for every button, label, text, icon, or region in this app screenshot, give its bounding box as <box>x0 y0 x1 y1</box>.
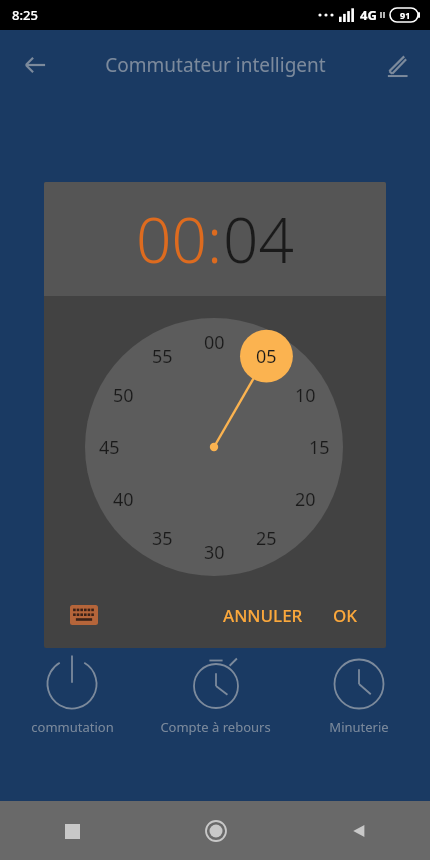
staticText: 00 <box>136 197 207 281</box>
staticText: 25 <box>256 526 277 551</box>
staticText: 00 <box>204 330 225 355</box>
button[interactable]: 45 <box>89 427 129 467</box>
button[interactable]: 55 <box>142 336 182 376</box>
staticText: Minuterie <box>329 718 389 736</box>
button[interactable]: commutation <box>0 648 144 736</box>
button[interactable]: ANNULER <box>209 594 317 637</box>
button[interactable]: Back <box>337 809 381 853</box>
staticText: 35 <box>152 526 173 551</box>
button[interactable]: 00 <box>136 197 207 281</box>
staticText: 55 <box>152 344 173 369</box>
button[interactable]: Compte à rebours <box>144 648 287 736</box>
button[interactable]: 00 <box>194 322 234 362</box>
button[interactable]: Back <box>14 44 56 86</box>
staticText: 91 <box>400 9 411 21</box>
button[interactable]: 04 <box>223 197 294 281</box>
button[interactable]: 10 <box>285 375 325 415</box>
button[interactable]: 30 <box>194 532 234 572</box>
staticText: Commutateur intelligent <box>105 52 326 78</box>
button[interactable]: OK <box>317 594 386 637</box>
staticText: 15 <box>309 435 330 460</box>
staticText: 4G <box>360 6 377 24</box>
staticText: 10 <box>295 383 316 408</box>
button[interactable]: Edit <box>376 44 418 86</box>
staticText: 04 <box>223 197 294 281</box>
staticText: commutation <box>31 718 114 736</box>
button[interactable]: 15 <box>299 427 339 467</box>
button[interactable]: 25 <box>246 518 286 558</box>
button[interactable]: Home <box>194 809 238 853</box>
button[interactable]: 40 <box>103 479 143 519</box>
staticText: OK <box>333 604 358 627</box>
staticText: 20 <box>295 487 316 512</box>
button[interactable]: Recents <box>50 809 94 853</box>
staticText: 45 <box>99 435 120 460</box>
button[interactable]: Switch to keyboard input <box>62 593 106 637</box>
staticText: : <box>207 197 223 281</box>
button[interactable]: 50 <box>103 375 143 415</box>
button[interactable]: Minuterie <box>287 648 430 736</box>
staticText: 50 <box>113 383 134 408</box>
staticText: 8:25 <box>12 6 38 24</box>
staticText: 05 <box>256 344 277 369</box>
staticText: Compte à rebours <box>160 718 271 736</box>
button[interactable]: 35 <box>142 518 182 558</box>
staticText: ANNULER <box>223 604 303 627</box>
button[interactable]: 05 <box>246 336 286 376</box>
staticText: 30 <box>204 540 225 565</box>
button[interactable]: 20 <box>285 479 325 519</box>
staticText: 40 <box>113 487 134 512</box>
